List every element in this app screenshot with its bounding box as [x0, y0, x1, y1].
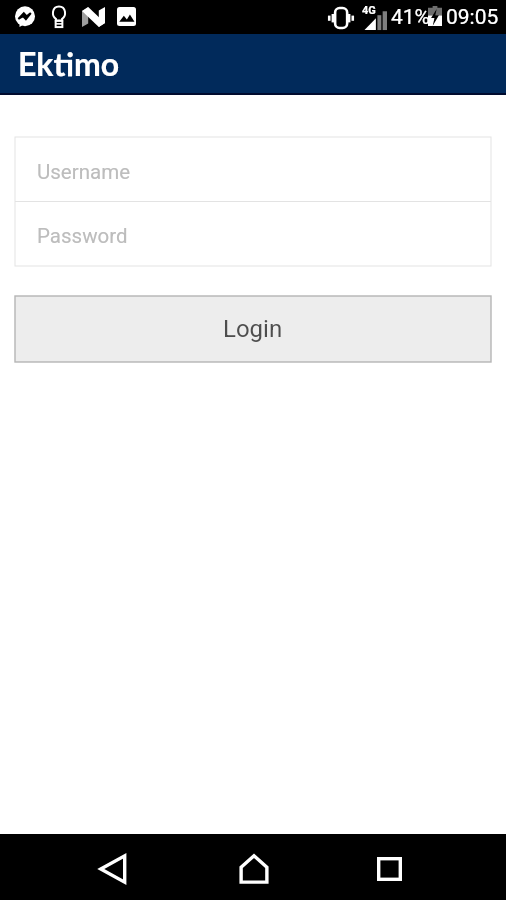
staticText: 09:05 [446, 5, 499, 30]
button[interactable]: Password [15, 202, 491, 266]
staticText: Login [223, 315, 283, 343]
staticText: Password [37, 224, 128, 248]
button[interactable]: Username [15, 137, 491, 202]
staticText: Ektimo [18, 44, 120, 82]
staticText: 4G [362, 4, 376, 17]
staticText: Username [37, 160, 131, 184]
button[interactable]: Back [73, 834, 153, 900]
button[interactable]: Login [15, 296, 491, 362]
button[interactable]: Home [214, 834, 294, 900]
staticText: 41% [391, 5, 430, 30]
button[interactable]: Recent apps [349, 834, 429, 900]
